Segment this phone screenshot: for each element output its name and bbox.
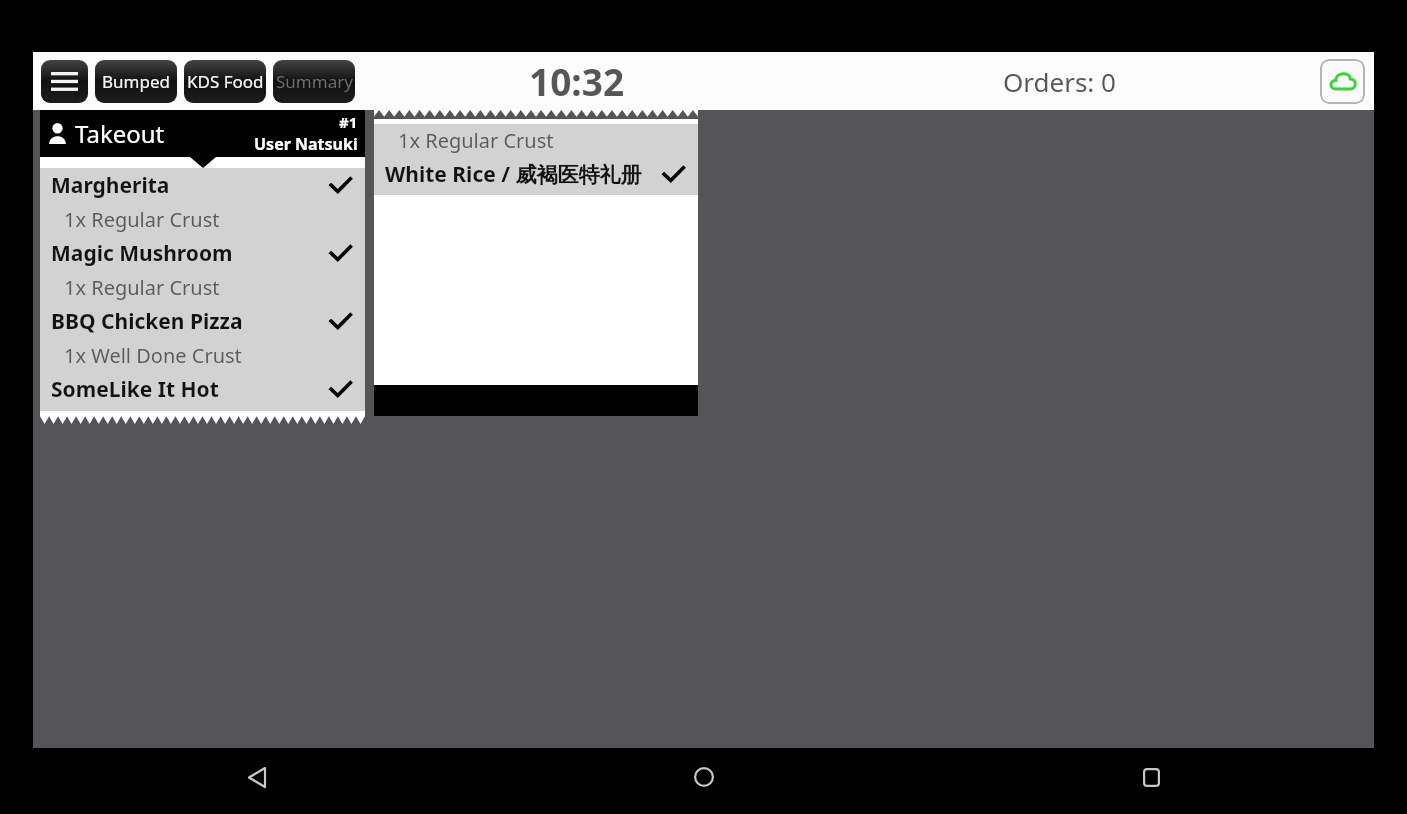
staticText: User Natsuki [254, 133, 358, 155]
button[interactable]: Summary [273, 60, 355, 103]
staticText: 10:32 [529, 56, 625, 106]
staticText: #1 [339, 112, 358, 132]
button[interactable]: Margherita [40, 168, 365, 203]
button[interactable]: Recent apps [1127, 753, 1175, 801]
button[interactable]: 1x Regular Crust [40, 271, 365, 304]
staticText: 1x Regular Crust [64, 206, 220, 233]
staticText: Orders: 0 [1003, 64, 1116, 99]
staticText: Summary [276, 70, 353, 93]
button[interactable]: 1x Well Done Crust [40, 339, 365, 372]
button[interactable]: Home [680, 753, 728, 801]
staticText: SomeLike It Hot [51, 375, 219, 404]
staticText: 1x Regular Crust [64, 274, 220, 301]
button[interactable]: SomeLike It Hot [40, 372, 365, 407]
button[interactable]: Cloud connection [1320, 59, 1365, 104]
staticText: Takeout [75, 117, 165, 150]
staticText: 1x Well Done Crust [64, 342, 242, 369]
button[interactable]: Magic Mushroom [40, 236, 365, 271]
button[interactable]: Bumped [95, 60, 177, 103]
button[interactable]: BBQ Chicken Pizza [40, 304, 365, 339]
staticText: KDS Food [187, 70, 264, 93]
staticText: Bumped [102, 70, 170, 93]
staticText: White Rice / 威褐医特礼册 [385, 160, 642, 189]
button[interactable]: Menu [41, 60, 88, 103]
button[interactable]: 1x Regular Crust [374, 124, 698, 157]
button[interactable]: Back [233, 753, 281, 801]
staticText: BBQ Chicken Pizza [51, 307, 243, 336]
button[interactable]: White Rice / 威褐医特礼册 [374, 157, 698, 192]
staticText: Magic Mushroom [51, 239, 233, 268]
button[interactable]: 1x Regular Crust [40, 203, 365, 236]
button[interactable]: KDS Food [184, 60, 266, 103]
staticText: Margherita [51, 171, 170, 200]
staticText: 1x Regular Crust [398, 127, 554, 154]
